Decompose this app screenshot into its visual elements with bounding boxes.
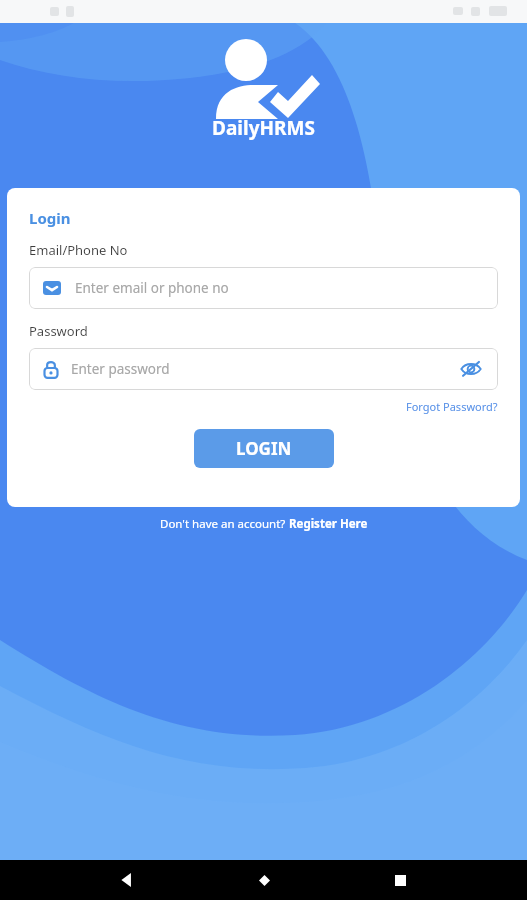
- button[interactable]: Enter email or phone no: [29, 267, 498, 309]
- button[interactable]: Home: [247, 863, 281, 897]
- staticText: Enter password: [71, 360, 458, 378]
- button[interactable]: Forgot Password?: [406, 399, 498, 414]
- button[interactable]: Enter password: [29, 348, 498, 390]
- staticText: Register Here: [289, 516, 368, 532]
- staticText: Password: [29, 322, 88, 340]
- button[interactable]: Recent apps: [383, 863, 417, 897]
- staticText: Email/Phone No: [29, 241, 128, 259]
- button[interactable]: Show password: [458, 356, 484, 382]
- staticText: Don't have an account?: [160, 516, 289, 532]
- button[interactable]: Back: [110, 863, 144, 897]
- staticText: Forgot Password?: [406, 399, 498, 414]
- button[interactable]: LOGIN: [194, 429, 334, 468]
- button[interactable]: Don't have an account?: [160, 516, 368, 532]
- staticText: LOGIN: [236, 437, 292, 460]
- staticText: Login: [29, 208, 71, 228]
- staticText: Enter email or phone no: [75, 279, 229, 297]
- staticText: DailyHRMS: [212, 115, 315, 141]
